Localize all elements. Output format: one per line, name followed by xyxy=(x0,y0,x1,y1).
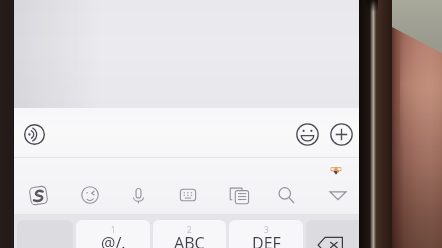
staticText: @/. xyxy=(101,232,126,248)
button[interactable]: Backspace xyxy=(306,220,359,248)
button[interactable]: Search xyxy=(268,177,304,213)
button[interactable]: Voice xyxy=(120,177,156,213)
button[interactable]: Add xyxy=(321,114,361,154)
button[interactable]: Clipboard xyxy=(221,177,257,213)
button[interactable]: Keyboard layout xyxy=(170,177,206,213)
button[interactable]: Hide keyboard xyxy=(320,177,356,213)
button[interactable]: 2 xyxy=(153,220,226,248)
staticText: 2 xyxy=(187,224,192,235)
staticText: DEF xyxy=(252,232,281,248)
button[interactable]: Emoji sticker xyxy=(328,162,344,178)
staticText: 1 xyxy=(111,224,116,235)
button[interactable]: Voice input xyxy=(14,114,54,154)
button[interactable]: 3 xyxy=(229,220,303,248)
staticText: 3 xyxy=(264,224,269,235)
button[interactable]: Emoji xyxy=(72,177,108,213)
staticText: ABC xyxy=(174,232,205,248)
button[interactable]: Sogou keyboard xyxy=(20,177,56,213)
button[interactable]: Emoji xyxy=(287,114,327,154)
button[interactable]: 1 xyxy=(76,220,150,248)
